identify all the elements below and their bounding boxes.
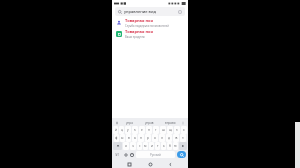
button[interactable]: ц bbox=[119, 126, 124, 134]
button[interactable]: Товарная ноя bbox=[112, 28, 188, 39]
staticText: упра bbox=[126, 121, 133, 125]
button[interactable]: в bbox=[126, 134, 131, 142]
staticText: управление вид bbox=[124, 9, 156, 14]
button[interactable]: п bbox=[138, 134, 144, 142]
button[interactable]: щ bbox=[167, 126, 173, 134]
button[interactable]: б bbox=[167, 142, 172, 150]
button[interactable]: н bbox=[146, 126, 152, 134]
button[interactable]: Search bbox=[115, 7, 185, 16]
staticText: ц bbox=[121, 128, 123, 132]
button[interactable]: Home bbox=[147, 161, 154, 168]
button[interactable]: к bbox=[132, 126, 138, 134]
button[interactable]: с bbox=[137, 142, 142, 150]
button[interactable]: р bbox=[145, 134, 151, 142]
button[interactable]: е bbox=[139, 126, 145, 134]
button[interactable]: Clear search bbox=[177, 9, 182, 14]
staticText: ь bbox=[163, 144, 165, 148]
button[interactable]: Recents bbox=[126, 161, 133, 168]
button[interactable]: упра bbox=[119, 121, 139, 125]
button[interactable]: я bbox=[123, 142, 129, 150]
button[interactable]: л bbox=[159, 134, 165, 142]
button[interactable]: м bbox=[143, 142, 148, 150]
staticText: х bbox=[183, 128, 185, 132]
staticText: а bbox=[134, 136, 136, 140]
button[interactable]: ф bbox=[114, 134, 119, 142]
staticText: я bbox=[125, 144, 127, 148]
button[interactable]: ю bbox=[173, 142, 178, 150]
button[interactable]: у bbox=[125, 126, 131, 134]
staticText: ю bbox=[174, 144, 177, 148]
staticText: !#1 bbox=[115, 153, 120, 157]
staticText: л bbox=[161, 136, 163, 140]
button[interactable]: Backspace bbox=[179, 142, 187, 150]
button[interactable]: э bbox=[180, 134, 186, 142]
staticText: Ваши продукты bbox=[125, 35, 145, 39]
button[interactable]: Shift bbox=[113, 142, 122, 150]
staticText: ф bbox=[115, 136, 118, 140]
staticText: Русский bbox=[150, 153, 161, 157]
staticText: в bbox=[128, 136, 130, 140]
staticText: с bbox=[139, 144, 141, 148]
staticText: ы bbox=[121, 136, 124, 140]
staticText: г bbox=[155, 128, 157, 132]
button[interactable]: Settings bbox=[123, 151, 128, 158]
button[interactable]: ь bbox=[161, 142, 166, 150]
button[interactable]: о bbox=[152, 134, 158, 142]
other: Search bbox=[118, 10, 122, 14]
button[interactable]: More options bbox=[181, 121, 185, 125]
staticText: э bbox=[182, 136, 184, 140]
staticText: вправо bbox=[165, 121, 176, 125]
staticText: п bbox=[140, 136, 142, 140]
staticText: управ bbox=[145, 121, 154, 125]
staticText: б bbox=[169, 144, 171, 148]
button[interactable]: и bbox=[149, 142, 154, 150]
staticText: м bbox=[144, 144, 147, 148]
button[interactable]: Emoji bbox=[129, 151, 135, 158]
button[interactable]: й bbox=[113, 126, 118, 134]
staticText: Товарная ноя bbox=[125, 18, 153, 23]
staticText: щ bbox=[169, 128, 172, 132]
button[interactable]: з bbox=[174, 126, 180, 134]
staticText: и bbox=[151, 144, 153, 148]
staticText: р bbox=[147, 136, 149, 140]
button[interactable]: вправо bbox=[160, 121, 181, 125]
button[interactable]: ш bbox=[160, 126, 166, 134]
staticText: д bbox=[168, 136, 170, 140]
staticText: к bbox=[134, 128, 136, 132]
staticText: ш bbox=[162, 128, 165, 132]
staticText: з bbox=[176, 128, 178, 132]
staticText: ч bbox=[132, 144, 134, 148]
staticText: у bbox=[127, 128, 129, 132]
button[interactable]: !#1 bbox=[113, 151, 122, 158]
button[interactable]: ы bbox=[120, 134, 125, 142]
staticText: т bbox=[157, 144, 159, 148]
staticText: Товарная ноя bbox=[125, 29, 153, 34]
button[interactable]: ж bbox=[173, 134, 179, 142]
staticText: е bbox=[141, 128, 143, 132]
button[interactable]: т bbox=[155, 142, 160, 150]
button[interactable]: Товарная ноя bbox=[112, 17, 188, 28]
button[interactable]: управ bbox=[139, 121, 160, 125]
button[interactable]: д bbox=[166, 134, 172, 142]
button[interactable]: г bbox=[153, 126, 159, 134]
button[interactable]: а bbox=[132, 134, 137, 142]
button[interactable]: х bbox=[181, 126, 187, 134]
staticText: о bbox=[154, 136, 156, 140]
button[interactable]: ч bbox=[130, 142, 136, 150]
staticText: ж bbox=[175, 136, 178, 140]
button[interactable]: Search bbox=[177, 151, 186, 158]
button[interactable]: Русский bbox=[136, 151, 175, 158]
button[interactable]: Voice input bbox=[115, 121, 119, 125]
staticText: Служба поддержки пользователей bbox=[125, 24, 169, 28]
staticText: н bbox=[148, 128, 150, 132]
button[interactable]: Back bbox=[167, 161, 174, 168]
staticText: й bbox=[115, 128, 117, 132]
